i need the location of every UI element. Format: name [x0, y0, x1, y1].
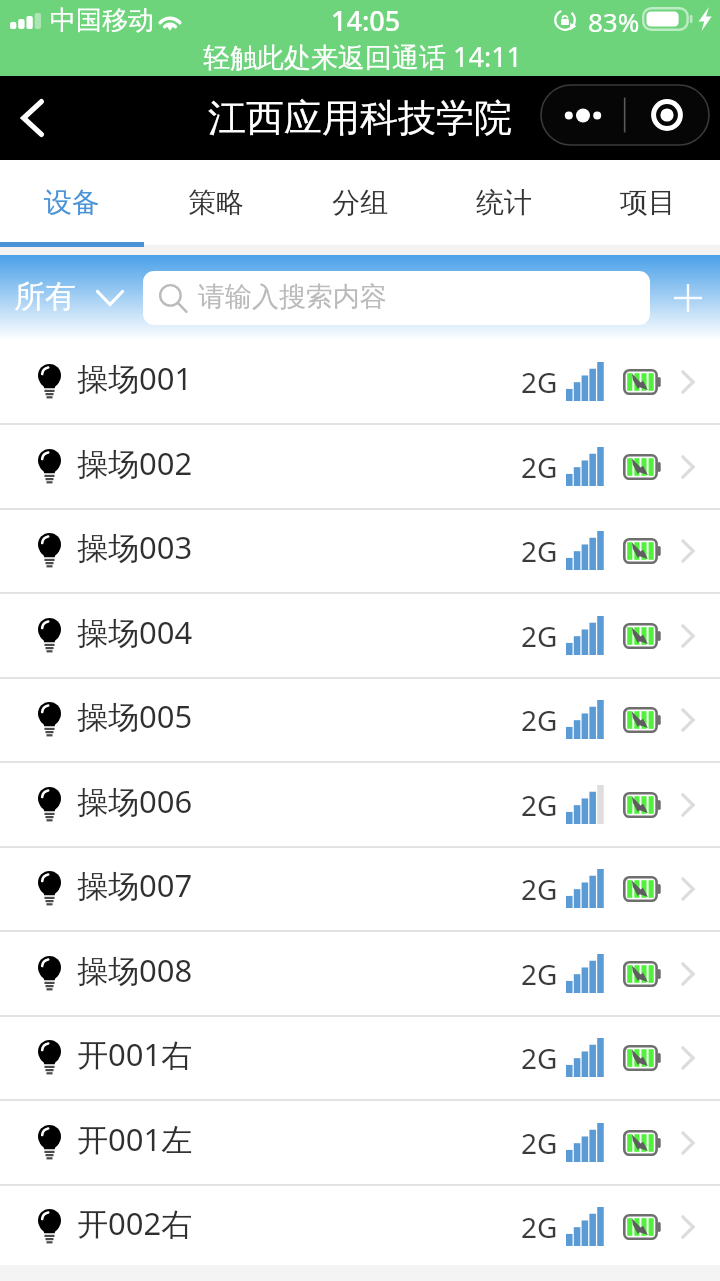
button[interactable]: 项目: [576, 160, 720, 245]
staticText: 2G: [521, 448, 558, 486]
staticText: 分组: [332, 185, 388, 220]
staticText: 14:05: [331, 2, 401, 39]
button[interactable]: 操场002: [0, 425, 720, 510]
staticText: 2G: [521, 1208, 558, 1246]
staticText: 2G: [521, 532, 558, 570]
staticText: 操场005: [77, 695, 193, 737]
button[interactable]: More options: [541, 85, 625, 145]
button[interactable]: 请输入搜索内容: [143, 271, 650, 325]
button[interactable]: 策略: [144, 160, 288, 245]
staticText: 83%: [588, 4, 640, 39]
button[interactable]: Back: [0, 76, 64, 160]
staticText: 2G: [521, 1124, 558, 1162]
staticText: 2G: [521, 786, 558, 824]
button[interactable]: 操场001: [0, 340, 720, 425]
button[interactable]: 操场006: [0, 763, 720, 848]
button[interactable]: 操场008: [0, 932, 720, 1017]
staticText: 统计: [476, 185, 532, 220]
button[interactable]: 开001左: [0, 1101, 720, 1186]
button[interactable]: 所有: [14, 268, 124, 328]
staticText: 开001右: [77, 1033, 193, 1075]
staticText: 开002右: [77, 1202, 193, 1244]
button[interactable]: 设备: [0, 160, 144, 245]
staticText: 操场004: [77, 611, 193, 653]
button[interactable]: 统计: [432, 160, 576, 245]
button[interactable]: 操场005: [0, 678, 720, 763]
button[interactable]: 分组: [288, 160, 432, 245]
staticText: 2G: [521, 701, 558, 739]
staticText: 轻触此处来返回通话 14:11: [203, 38, 523, 75]
staticText: 操场008: [77, 949, 193, 991]
staticText: 操场006: [77, 780, 193, 822]
staticText: 策略: [188, 185, 244, 220]
button[interactable]: 轻触此处来返回通话 14:11: [0, 36, 720, 76]
button[interactable]: Add device: [654, 255, 720, 340]
staticText: 2G: [521, 955, 558, 993]
staticText: 2G: [521, 1039, 558, 1077]
staticText: 操场002: [77, 442, 193, 484]
staticText: 2G: [521, 617, 558, 655]
button[interactable]: 开001右: [0, 1016, 720, 1101]
button[interactable]: 操场003: [0, 509, 720, 594]
staticText: 项目: [620, 185, 676, 220]
staticText: 2G: [521, 870, 558, 908]
staticText: 操场003: [77, 526, 193, 568]
staticText: 江西应用科技学院: [208, 94, 512, 142]
staticText: 操场001: [77, 357, 193, 399]
staticText: 请输入搜索内容: [198, 280, 387, 314]
button[interactable]: 操场007: [0, 847, 720, 932]
staticText: 设备: [44, 185, 100, 220]
staticText: 所有: [14, 277, 76, 316]
staticText: 2G: [521, 363, 558, 401]
staticText: 开001左: [77, 1118, 193, 1160]
staticText: 操场007: [77, 864, 193, 906]
button[interactable]: 操场004: [0, 594, 720, 679]
staticText: 中国移动: [50, 4, 154, 37]
button[interactable]: Close mini program: [625, 85, 709, 145]
button[interactable]: 开002右: [0, 1185, 720, 1270]
